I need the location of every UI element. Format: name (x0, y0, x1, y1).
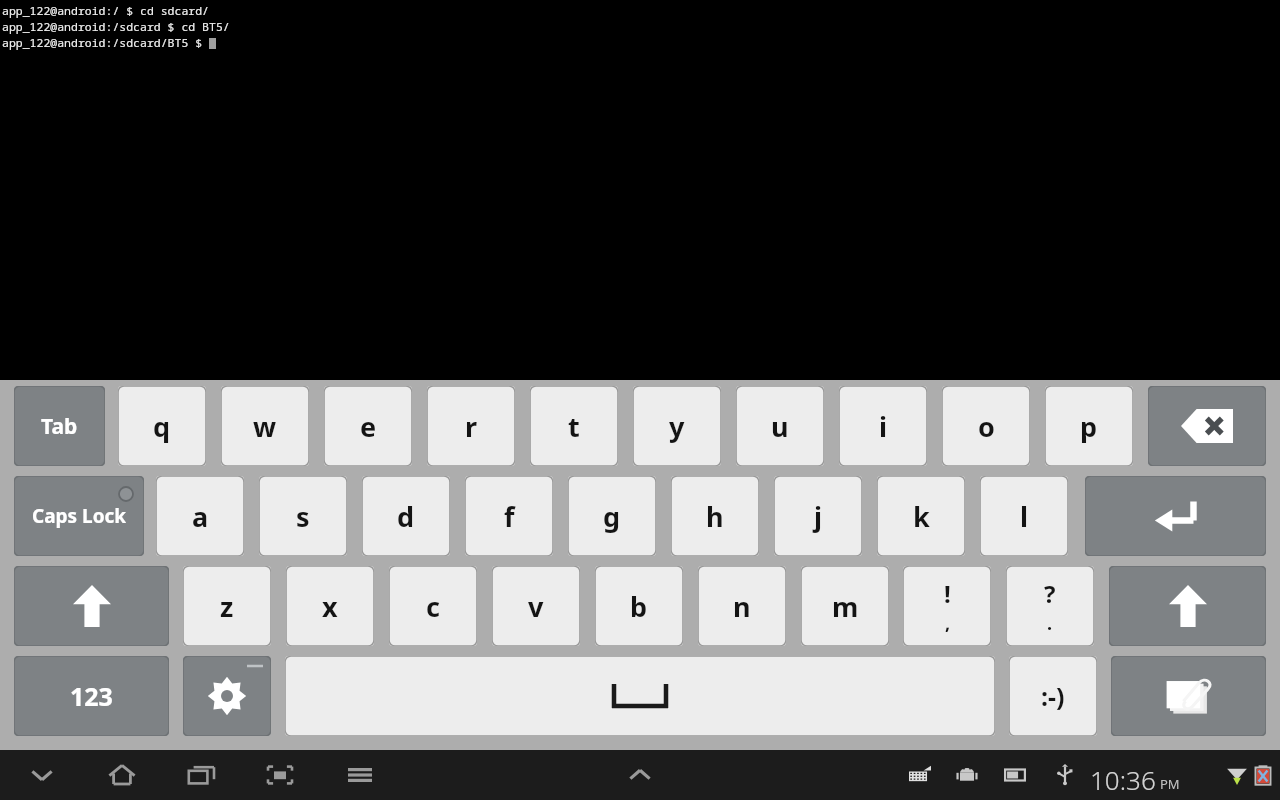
button[interactable]: Fullscreen (258, 750, 302, 800)
staticText: j (814, 498, 823, 535)
button[interactable]: z (183, 566, 271, 646)
button[interactable]: d (362, 476, 450, 556)
button[interactable]: Expand (618, 750, 662, 800)
button[interactable]: Screenshot (1000, 750, 1030, 800)
button[interactable]: Recent apps (180, 750, 224, 800)
button[interactable]: c (389, 566, 477, 646)
button[interactable]: e (324, 386, 412, 466)
staticText: Caps Lock (32, 503, 127, 529)
staticText: w (253, 408, 277, 445)
button[interactable]: w (221, 386, 309, 466)
staticText: z (220, 588, 234, 625)
button[interactable]: Home (100, 750, 144, 800)
staticText: ! (944, 577, 951, 610)
button[interactable]: u (736, 386, 824, 466)
button[interactable]: Battery (1248, 750, 1278, 800)
staticText: u (771, 408, 789, 445)
button[interactable]: t (530, 386, 618, 466)
staticText: ? (1044, 577, 1056, 610)
button[interactable]: Menu (338, 750, 382, 800)
staticText: m (832, 588, 859, 625)
button[interactable]: g (568, 476, 656, 556)
staticText: o (978, 408, 995, 445)
button[interactable]: h (671, 476, 759, 556)
button[interactable]: :-) (1009, 656, 1097, 736)
staticText: s (296, 498, 310, 535)
button[interactable]: Shift (14, 566, 169, 646)
button[interactable]: Space (285, 656, 995, 736)
button[interactable]: j (774, 476, 862, 556)
button[interactable]: o (942, 386, 1030, 466)
staticText: Tab (41, 412, 78, 441)
button[interactable]: Attach (1111, 656, 1266, 736)
button[interactable]: f (465, 476, 553, 556)
button[interactable]: k (877, 476, 965, 556)
button[interactable]: b (595, 566, 683, 646)
button[interactable]: n (698, 566, 786, 646)
staticText: n (733, 588, 751, 625)
button[interactable]: Tab (14, 386, 105, 466)
staticText: c (426, 588, 440, 625)
staticText: . (1047, 611, 1053, 636)
staticText: q (153, 408, 171, 445)
button[interactable]: Keyboard settings (183, 656, 271, 736)
staticText: t (568, 408, 580, 445)
button[interactable]: l (980, 476, 1068, 556)
staticText: v (528, 588, 544, 625)
button[interactable]: Input method (905, 750, 935, 800)
button[interactable]: USB (1050, 750, 1080, 800)
button[interactable]: ! (903, 566, 991, 646)
staticText: app_122@android:/ $ cd sdcard/ (2, 3, 209, 19)
button[interactable]: Network (1222, 750, 1252, 800)
staticText: app_122@android:/sdcard $ cd BT5/ (2, 19, 230, 35)
button[interactable]: m (801, 566, 889, 646)
button[interactable]: i (839, 386, 927, 466)
button[interactable]: Android (952, 750, 982, 800)
button[interactable]: Shift (1109, 566, 1266, 646)
staticText: a (192, 498, 209, 535)
button[interactable]: v (492, 566, 580, 646)
button[interactable]: p (1045, 386, 1133, 466)
button[interactable]: q (118, 386, 206, 466)
button[interactable]: a (156, 476, 244, 556)
staticText: f (504, 498, 515, 535)
staticText: 123 (70, 679, 113, 713)
staticText: e (360, 408, 377, 445)
button[interactable]: Caps Lock (14, 476, 144, 556)
staticText: PM (1160, 775, 1180, 793)
button[interactable]: Hide keyboard (20, 750, 64, 800)
staticText: b (630, 588, 648, 625)
staticText: i (879, 408, 888, 445)
staticText: r (465, 408, 478, 445)
button[interactable]: Backspace (1148, 386, 1266, 466)
button[interactable]: x (286, 566, 374, 646)
staticText: :-) (1041, 679, 1065, 713)
staticText: l (1020, 498, 1029, 535)
staticText: g (603, 498, 621, 535)
staticText: y (669, 408, 685, 445)
staticText: k (913, 498, 930, 535)
button[interactable]: y (633, 386, 721, 466)
staticText: p (1080, 408, 1098, 445)
staticText: 10:36 (1090, 762, 1156, 797)
staticText: app_122@android:/sdcard/BT5 $ (2, 35, 209, 51)
staticText: , (945, 611, 951, 636)
staticText: h (706, 498, 724, 535)
button[interactable]: Enter (1085, 476, 1266, 556)
button[interactable]: ? (1006, 566, 1094, 646)
button[interactable]: 123 (14, 656, 169, 736)
staticText: x (322, 588, 338, 625)
button[interactable]: s (259, 476, 347, 556)
button[interactable]: r (427, 386, 515, 466)
staticText: d (397, 498, 415, 535)
